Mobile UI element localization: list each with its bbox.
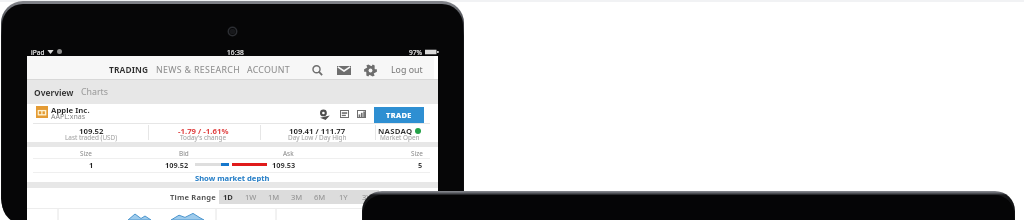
staticText: TRADE	[386, 110, 412, 120]
button[interactable]: 1W	[240, 190, 262, 204]
button[interactable]: NEWS & RESEARCH	[154, 61, 242, 78]
button[interactable]: TRADE	[374, 107, 424, 123]
staticText: Bid	[179, 149, 189, 158]
button[interactable]: Set price alert	[318, 109, 330, 120]
staticText: 109.52	[165, 160, 189, 170]
staticText: Overview	[34, 87, 74, 98]
staticText: 109.53	[272, 160, 296, 170]
staticText: Show market depth	[195, 173, 270, 183]
staticText: Size	[411, 149, 423, 158]
button[interactable]: 1M	[263, 190, 285, 204]
staticText: 1M	[268, 192, 280, 202]
staticText: 5	[418, 160, 423, 170]
button[interactable]: Show market depth	[192, 172, 272, 183]
button[interactable]: 1Y	[332, 190, 354, 204]
button[interactable]: Search	[308, 61, 326, 79]
staticText: 1Y	[339, 192, 348, 202]
button[interactable]: 3M	[286, 190, 308, 204]
button[interactable]: Messages	[335, 61, 353, 79]
staticText: Time Range	[170, 192, 216, 202]
staticText: Log out	[391, 64, 423, 76]
staticText: 3M	[291, 192, 303, 202]
staticText: 109.52	[79, 126, 104, 137]
staticText: 109.41 / 111.77	[289, 126, 346, 137]
button[interactable]: 6M	[309, 190, 331, 204]
staticText: NEWS & RESEARCH	[156, 64, 241, 76]
staticText: Apple Inc.	[51, 105, 90, 116]
staticText: 97%	[409, 48, 423, 57]
button[interactable]: TRADING	[106, 61, 152, 78]
staticText: Last traded (USD)	[65, 133, 118, 142]
button[interactable]: Fundamentals	[340, 110, 349, 118]
staticText: 1D	[223, 192, 233, 202]
staticText: Market Open	[380, 133, 420, 142]
button[interactable]: Settings	[361, 61, 379, 79]
staticText: iPad	[31, 48, 45, 57]
staticText: Size	[80, 149, 92, 158]
button[interactable]: 3Y	[355, 190, 377, 204]
staticText: NASDAQ	[378, 126, 413, 137]
staticText: AAPL:xnas	[51, 112, 86, 122]
button[interactable]: ACCOUNT	[246, 61, 290, 78]
staticText: Charts	[81, 86, 108, 98]
button[interactable]: Company news	[357, 110, 366, 118]
staticText: -1.79 / -1.61%	[178, 126, 229, 137]
staticText: TRADING	[109, 64, 149, 75]
staticText: Ask	[283, 149, 294, 158]
staticText: 6M	[314, 192, 326, 202]
button[interactable]: Overview	[33, 84, 75, 100]
button[interactable]: Charts	[79, 84, 109, 100]
staticText: 1W	[245, 192, 257, 202]
button[interactable]: Log out	[389, 61, 425, 78]
staticText: ACCOUNT	[247, 64, 290, 76]
button[interactable]: 1D	[217, 190, 239, 204]
staticText: 16:38	[227, 48, 244, 57]
staticText: Day Low / Day High	[288, 133, 347, 142]
staticText: 3Y	[362, 192, 371, 202]
staticText: 1	[89, 160, 94, 170]
staticText: Today's change	[180, 133, 227, 142]
